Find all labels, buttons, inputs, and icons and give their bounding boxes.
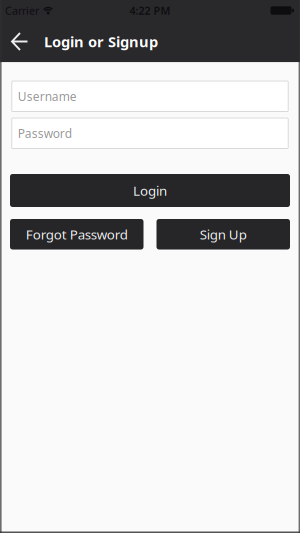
button[interactable]: Back — [0, 32, 33, 51]
staticText: Login — [133, 182, 167, 199]
staticText: Forgot Password — [26, 225, 128, 243]
button[interactable]: Username — [11, 80, 289, 112]
staticText: Sign Up — [200, 225, 247, 243]
button[interactable]: Password — [11, 117, 289, 149]
button[interactable]: Forgot Password — [10, 219, 143, 249]
staticText: 4:22 PM — [129, 3, 170, 18]
staticText: Username — [18, 88, 77, 104]
staticText: Login or Signup — [44, 32, 158, 51]
button[interactable]: Login — [10, 174, 290, 207]
staticText: Password — [18, 125, 72, 141]
staticText: Carrier — [5, 3, 39, 18]
button[interactable]: Sign Up — [156, 219, 290, 249]
